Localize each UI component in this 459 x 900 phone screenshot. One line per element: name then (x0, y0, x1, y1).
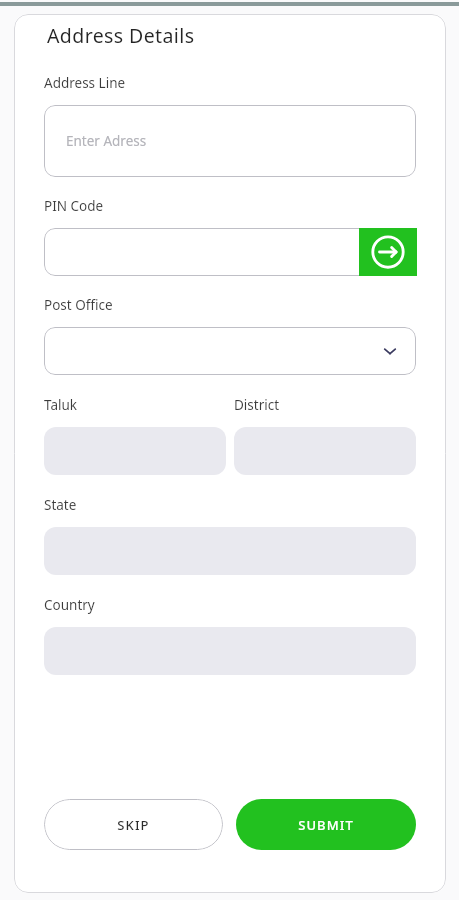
button[interactable]: Search PIN code (359, 228, 417, 276)
staticText: State (44, 496, 77, 514)
staticText: Enter Adress (66, 132, 147, 150)
staticText: Address Details (47, 22, 195, 49)
staticText: SUBMIT (298, 816, 354, 834)
button[interactable]: SKIP (44, 799, 223, 850)
button[interactable]: SUBMIT (236, 799, 416, 850)
staticText: SKIP (117, 816, 150, 834)
button[interactable]: Enter Adress (44, 105, 416, 177)
staticText: Taluk (44, 396, 226, 414)
button[interactable] (44, 327, 416, 375)
staticText: Post Office (44, 296, 113, 314)
button[interactable] (44, 228, 416, 276)
staticText: PIN Code (44, 197, 104, 215)
button[interactable]: Expand post office list (379, 340, 401, 362)
staticText: District (234, 396, 416, 414)
staticText: Country (44, 596, 95, 614)
staticText: Address Line (44, 74, 126, 92)
